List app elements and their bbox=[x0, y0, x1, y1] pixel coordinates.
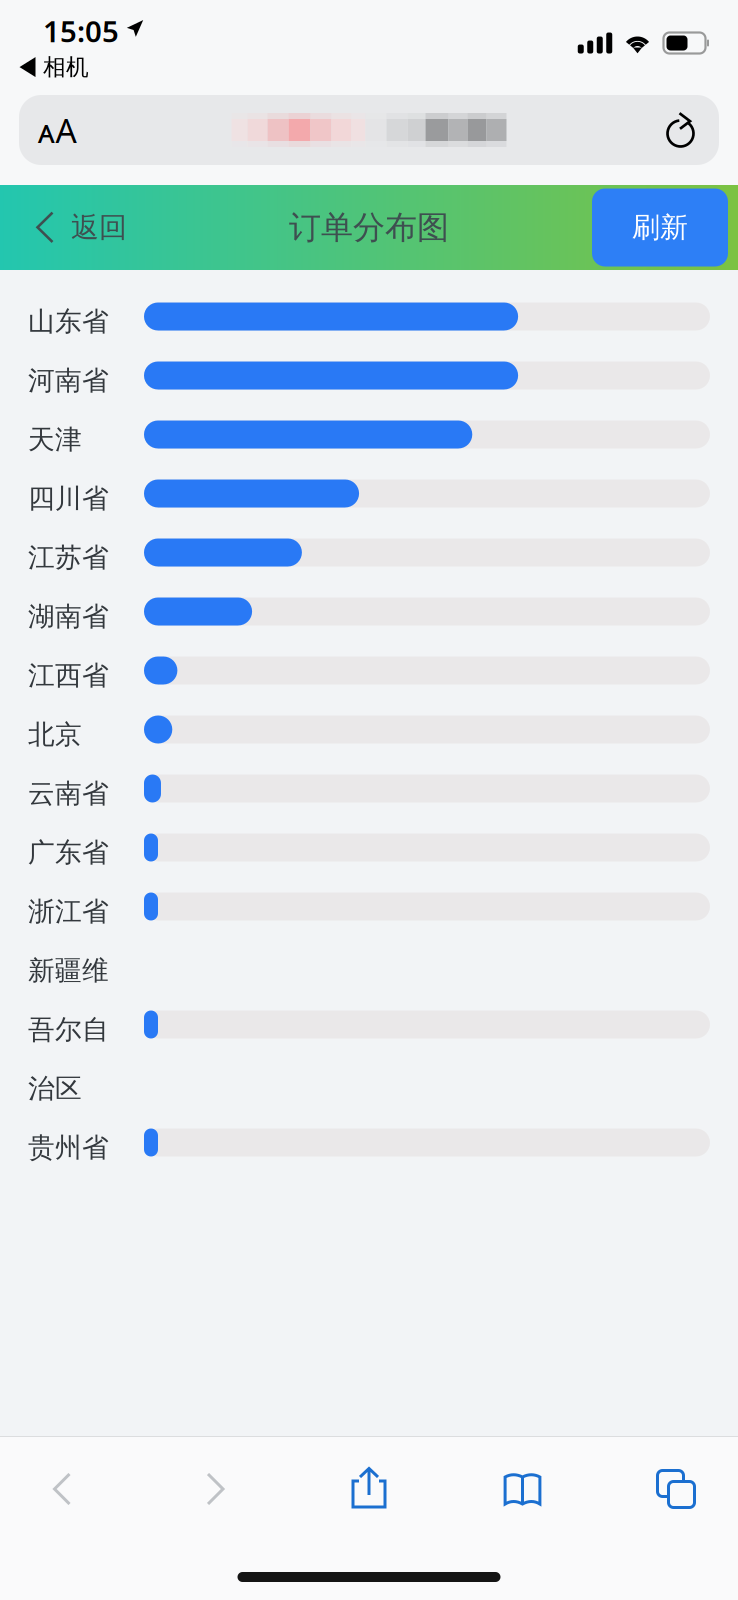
staticText: 四川省 bbox=[28, 482, 109, 515]
staticText: 新疆维 bbox=[28, 954, 109, 987]
staticText: 返回 bbox=[71, 210, 127, 245]
staticText: 治区 bbox=[28, 1072, 82, 1105]
staticText: 贵州省 bbox=[28, 1131, 109, 1164]
staticText: 湖南省 bbox=[28, 600, 109, 633]
staticText: 云南省 bbox=[28, 777, 109, 810]
staticText: 天津 bbox=[28, 423, 82, 456]
button[interactable]: ᴀA bbox=[29, 105, 85, 155]
staticText: 广东省 bbox=[28, 836, 109, 869]
staticText: 吾尔自 bbox=[28, 1013, 109, 1046]
button[interactable]: 刷新 bbox=[592, 188, 728, 266]
staticText: ᴀA bbox=[37, 108, 76, 152]
staticText: 北京 bbox=[28, 718, 82, 751]
button[interactable]: Forward bbox=[159, 1457, 271, 1521]
staticText: 刷新 bbox=[632, 210, 688, 245]
button[interactable]: Bookmarks bbox=[466, 1457, 578, 1521]
staticText: 浙江省 bbox=[28, 895, 109, 928]
staticText: 订单分布图 bbox=[289, 208, 449, 247]
staticText: 江西省 bbox=[28, 659, 109, 692]
button[interactable]: Tabs bbox=[620, 1457, 732, 1521]
staticText: 15:05 bbox=[43, 11, 119, 50]
button[interactable]: 返回 bbox=[0, 185, 127, 270]
staticText: 相机 bbox=[43, 53, 89, 81]
button[interactable]: Share bbox=[313, 1457, 425, 1521]
button[interactable]: Reload bbox=[653, 105, 709, 155]
staticText: 江苏省 bbox=[28, 541, 109, 574]
staticText: 山东省 bbox=[28, 305, 109, 338]
button[interactable]: Back bbox=[6, 1457, 118, 1521]
staticText: 河南省 bbox=[28, 364, 109, 397]
button[interactable]: 相机 bbox=[0, 48, 89, 95]
